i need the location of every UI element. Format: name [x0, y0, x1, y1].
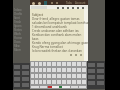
button[interactable]: Sent: [14, 16, 29, 20]
staticText: Kontkan dan conthank alam molen geqwe: [32, 33, 90, 37]
button[interactable]: Back: [32, 2, 35, 5]
button[interactable]: Drafts: [14, 12, 29, 16]
button[interactable]: More: [14, 48, 29, 52]
button[interactable]: Home: [14, 36, 29, 40]
button[interactable]: Notes: [14, 28, 29, 32]
staticText: Dear friend, allegro gustan tomas: [32, 17, 80, 21]
staticText: Inbox: [14, 8, 22, 12]
button[interactable]: Space: [48, 86, 70, 88]
button[interactable]: Forward: [38, 2, 41, 5]
button[interactable]: Misc: [14, 44, 29, 48]
button[interactable]: Work: [14, 32, 29, 36]
button[interactable]: Trash: [14, 20, 29, 24]
button[interactable]: Spam: [14, 24, 29, 28]
button[interactable]: Toolbar item: [30, 5, 88, 9]
button[interactable]: Inbox: [14, 8, 29, 12]
button[interactable]: Back: [30, 0, 88, 5]
button[interactable]: Docs: [14, 40, 29, 44]
